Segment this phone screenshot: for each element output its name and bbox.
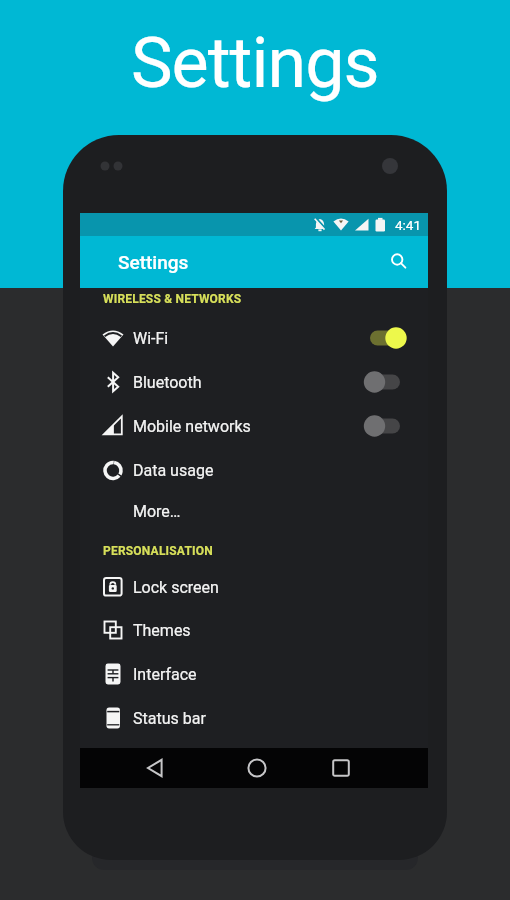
- staticText: Settings: [131, 22, 379, 104]
- staticText: Wi-Fi: [133, 329, 169, 348]
- staticText: Interface: [133, 665, 197, 684]
- button[interactable]: [321, 748, 361, 788]
- staticText: PERSONALISATION: [103, 544, 213, 558]
- staticText: Bluetooth: [133, 373, 202, 392]
- staticText: 4:41: [395, 217, 422, 233]
- button[interactable]: Interface: [80, 652, 428, 696]
- button[interactable]: More…: [80, 489, 428, 533]
- staticText: Themes: [133, 621, 191, 640]
- button[interactable]: Bluetooth: [80, 360, 428, 404]
- button[interactable]: [364, 369, 407, 395]
- button[interactable]: Themes: [80, 608, 428, 652]
- button[interactable]: [136, 748, 176, 788]
- button[interactable]: Wi-Fi: [80, 316, 428, 360]
- staticText: Settings: [118, 251, 189, 273]
- staticText: WIRELESS & NETWORKS: [103, 292, 242, 306]
- button[interactable]: Data usage: [80, 448, 428, 492]
- button[interactable]: Lock screen: [80, 565, 428, 609]
- staticText: Lock screen: [133, 578, 219, 597]
- staticText: Mobile networks: [133, 417, 251, 436]
- button[interactable]: [364, 325, 407, 351]
- staticText: More…: [133, 502, 181, 521]
- button[interactable]: [386, 249, 412, 275]
- button[interactable]: Mobile networks: [80, 404, 428, 448]
- button[interactable]: [364, 413, 407, 439]
- staticText: Status bar: [133, 709, 206, 728]
- staticText: Data usage: [133, 461, 214, 480]
- button[interactable]: [237, 748, 277, 788]
- button[interactable]: Status bar: [80, 696, 428, 740]
